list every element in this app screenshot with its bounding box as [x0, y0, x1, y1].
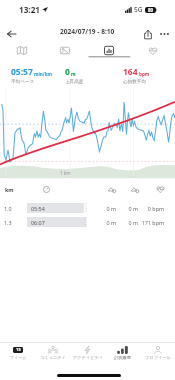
staticText: 上昇高度 [65, 79, 84, 85]
button[interactable]: コミュニティ [35, 345, 70, 365]
staticText: 13:21 [19, 4, 41, 15]
staticText: 05:57 [11, 66, 33, 78]
button[interactable]: Back [3, 26, 19, 42]
button[interactable]: More options [156, 26, 172, 42]
staticText: 0 bpm [138, 205, 164, 212]
staticText: コミュニティ [40, 355, 66, 360]
staticText: 0 m [86, 219, 116, 226]
staticText: bpm [139, 71, 150, 77]
staticText: 80 [148, 7, 154, 13]
staticText: km [5, 186, 27, 193]
staticText: 0 [65, 66, 70, 78]
staticText: アクティビティ [73, 355, 103, 360]
staticText: min/km [34, 71, 53, 77]
button[interactable]: Share [140, 26, 156, 42]
button[interactable]: 1.0 [0, 203, 175, 213]
button[interactable]: 1.3 [0, 217, 175, 227]
staticText: m [71, 71, 76, 77]
staticText: 2024/07/19 - 8:10 [60, 27, 115, 36]
staticText: 1 km [60, 170, 71, 176]
button[interactable]: 計測履歴 [105, 345, 140, 365]
staticText: 1.3 [4, 219, 27, 226]
staticText: 164 [123, 66, 138, 78]
button[interactable]: Map [0, 42, 43, 58]
staticText: 0 m [86, 205, 116, 212]
button[interactable]: アクティビティ [70, 345, 105, 365]
button[interactable]: 15 [0, 345, 35, 365]
button[interactable]: Heart rate [131, 42, 175, 58]
staticText: 平均ペース [11, 79, 35, 85]
staticText: 計測履歴 [114, 355, 131, 360]
staticText: プロフィール [145, 355, 171, 360]
staticText: 心拍数平均 [123, 79, 146, 85]
staticText: 06:07 [31, 219, 45, 226]
button[interactable]: Photos [43, 42, 87, 58]
staticText: 15 [16, 347, 21, 353]
staticText: フィード [9, 355, 27, 360]
staticText: 5G [134, 5, 143, 14]
staticText: 0 m [116, 205, 138, 212]
staticText: 0 m [116, 219, 138, 226]
staticText: 171 bpm [138, 219, 164, 226]
staticText: 05:54 [31, 205, 45, 212]
button[interactable]: プロフィール [140, 345, 175, 365]
staticText: 1.0 [4, 205, 27, 212]
button[interactable]: Charts [87, 42, 131, 58]
